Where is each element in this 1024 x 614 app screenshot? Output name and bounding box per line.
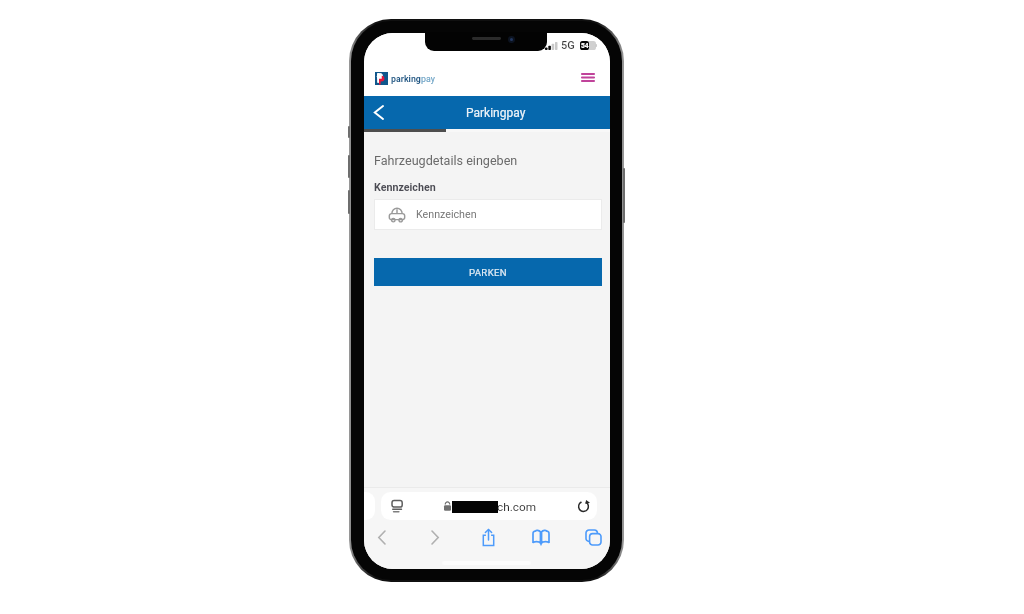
staticText: ch.com — [497, 500, 537, 514]
button[interactable]: PARKEN — [374, 258, 602, 286]
staticText: pay — [421, 74, 435, 84]
other: Share — [482, 529, 495, 546]
other: Go back — [378, 531, 385, 544]
button[interactable]: Tabs — [580, 524, 606, 550]
staticText: 5G — [561, 39, 575, 52]
button[interactable]: Back — [364, 96, 392, 129]
other: Page settings — [392, 500, 403, 513]
staticText: parking — [391, 74, 421, 84]
other: Tabs — [586, 530, 601, 545]
button[interactable]: Page settings — [381, 492, 597, 520]
button[interactable]: Kennzeichen — [374, 199, 602, 230]
staticText: Parkingpay — [466, 106, 526, 120]
button[interactable]: Menu — [576, 65, 600, 89]
staticText: PARKEN — [469, 267, 507, 278]
staticText: Kennzeichen — [374, 181, 436, 194]
staticText: 54 — [581, 42, 589, 50]
staticText: Fahrzeugdetails eingeben — [374, 153, 518, 168]
other: Go forward — [432, 531, 439, 544]
staticText: Kennzeichen — [416, 208, 477, 221]
button[interactable]: Share — [475, 524, 501, 550]
button[interactable]: Bookmarks — [528, 524, 554, 550]
other: Reload — [577, 500, 590, 513]
other: Bookmarks — [533, 530, 549, 544]
button[interactable]: Go forward — [422, 524, 448, 550]
button[interactable]: Go back — [368, 524, 394, 550]
